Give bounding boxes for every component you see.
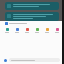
button[interactable] (5, 2, 59, 10)
button[interactable]: Messages (15, 28, 19, 33)
button[interactable] (9, 58, 60, 62)
button[interactable]: Add attachment (4, 59, 7, 62)
button[interactable]: More (55, 28, 59, 33)
button[interactable]: Drive (45, 28, 49, 33)
button[interactable] (0, 21, 64, 26)
button[interactable] (5, 12, 59, 21)
button[interactable]: Copy link (5, 28, 9, 33)
button[interactable]: Mail (25, 28, 29, 33)
button[interactable]: Notes (35, 28, 39, 33)
